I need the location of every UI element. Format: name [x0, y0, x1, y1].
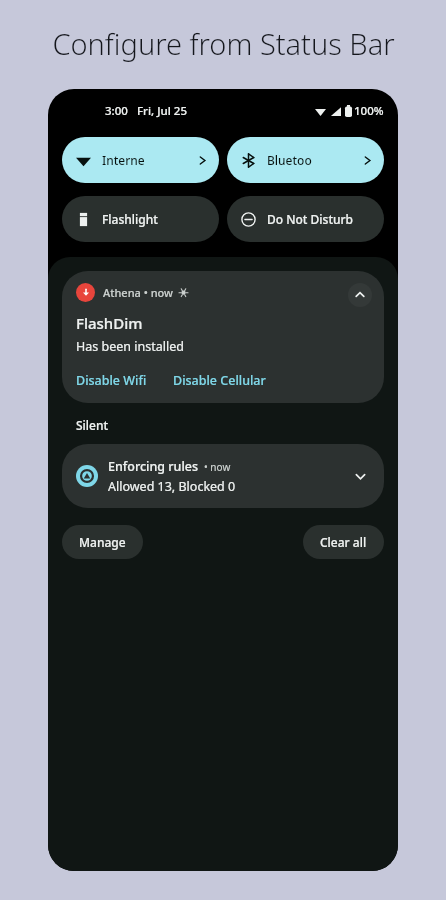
- staticText: Disable Wifi: [76, 372, 147, 389]
- staticText: • now: [204, 460, 231, 474]
- button[interactable]: Athena • now: [62, 271, 384, 403]
- button[interactable]: Collapse notification: [348, 283, 372, 307]
- staticText: Athena • now: [103, 285, 173, 300]
- staticText: Fri, Jul 25: [137, 103, 187, 119]
- staticText: Configure from Status Bar: [52, 24, 395, 63]
- staticText: Flashlight: [102, 211, 158, 227]
- staticText: 3:00: [105, 103, 128, 119]
- staticText: Do Not Disturb: [267, 211, 354, 227]
- button[interactable]: Bluetooth: [227, 137, 384, 183]
- button[interactable]: Do Not Disturb: [227, 196, 384, 242]
- button[interactable]: Manage: [62, 525, 143, 559]
- staticText: Clear all: [320, 534, 367, 550]
- button[interactable]: Clear all: [303, 525, 384, 559]
- staticText: Has been installed: [76, 338, 184, 355]
- button[interactable]: Internet: [62, 137, 219, 183]
- button[interactable]: Expand notification: [348, 464, 372, 488]
- staticText: Allowed 13, Blocked 0: [108, 478, 236, 495]
- staticText: Disable Cellular: [173, 372, 266, 389]
- button[interactable]: Enforcing rules: [62, 444, 384, 508]
- staticText: 100%: [354, 103, 384, 119]
- button[interactable]: Disable Cellular: [173, 372, 266, 389]
- staticText: Bluetooth: [267, 152, 314, 168]
- staticText: Internet: [102, 152, 149, 168]
- staticText: Manage: [79, 534, 126, 550]
- button[interactable]: Disable Wifi: [76, 372, 147, 389]
- staticText: Enforcing rules: [108, 458, 199, 475]
- staticText: Silent: [76, 417, 109, 433]
- staticText: FlashDim: [76, 313, 143, 333]
- button[interactable]: Flashlight: [62, 196, 219, 242]
